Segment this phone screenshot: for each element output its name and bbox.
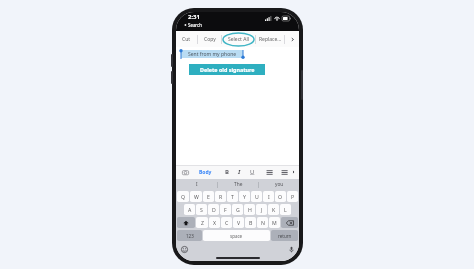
button[interactable]: Replace... [256,31,284,47]
button[interactable]: J [256,204,267,215]
button[interactable]: Delete old signature [189,64,265,75]
staticText: U [255,193,259,200]
staticText: Z [201,219,204,226]
staticText: P [291,193,295,200]
button[interactable]: E [203,191,214,202]
staticText: O [278,193,283,200]
staticText: you [275,181,284,188]
button[interactable]: W [190,191,202,202]
staticText: 2:31 [188,13,200,21]
staticText: F [224,206,227,213]
button[interactable]: N [257,217,268,228]
staticText: I [238,168,241,176]
button[interactable]: Z [196,217,208,228]
button[interactable]: D [208,204,219,215]
button[interactable]: S [196,204,207,215]
staticText: K [272,206,276,213]
button[interactable]: I [238,168,241,176]
staticText: return [278,233,292,239]
button[interactable]: K [268,204,279,215]
button[interactable]: I [263,191,274,202]
staticText: Y [243,193,246,200]
button[interactable]: M [269,217,280,228]
staticText: N [261,219,265,226]
staticText: G [236,206,240,213]
button[interactable]: Body [199,169,212,176]
staticText: Search [188,22,202,28]
button[interactable]: Insert photo [181,168,189,176]
button[interactable]: Cut [176,31,197,47]
button[interactable]: U [251,191,262,202]
button[interactable]: 123 [177,230,202,241]
button[interactable]: O [275,191,286,202]
button[interactable]: F [220,204,231,215]
other: More formatting [293,170,294,174]
button[interactable]: P [287,191,298,202]
staticText: E [207,193,210,200]
staticText: I [196,181,198,188]
staticText: B [249,219,253,226]
staticText: J [261,206,263,213]
staticText: Q [181,193,186,200]
staticText: The [234,181,243,188]
button[interactable]: Dictate [287,245,295,253]
staticText: D [212,206,216,213]
button[interactable]: X [209,217,220,228]
button[interactable]: H [244,204,255,215]
staticText: space [230,233,243,239]
staticText: S [200,206,203,213]
staticText: X [213,219,217,226]
button[interactable]: U [250,168,255,176]
button[interactable]: B [245,217,256,228]
button[interactable]: C [221,217,232,228]
staticText: V [237,219,241,226]
staticText: Sent from my phone [188,51,237,58]
button[interactable]: Emoji [180,245,188,253]
staticText: L [284,206,287,213]
button[interactable]: Y [239,191,250,202]
button[interactable]: T [227,191,238,202]
staticText: U [250,168,255,176]
button[interactable]: return [271,230,298,241]
button[interactable]: space [203,230,270,241]
staticText: W [194,193,199,200]
button[interactable]: you [259,179,299,190]
staticText: Cut [182,36,191,43]
button[interactable]: Select All [223,33,254,46]
button[interactable]: Delete [281,217,298,228]
button[interactable]: The [218,179,258,190]
button[interactable]: R [215,191,226,202]
staticText: R [219,193,223,200]
button[interactable]: I [176,179,217,190]
button[interactable]: Shift [177,217,195,228]
staticText: H [248,206,252,213]
button[interactable]: Q [177,191,189,202]
staticText: Select All [228,36,249,43]
button[interactable]: Copy [198,31,221,47]
button[interactable]: B [225,168,229,176]
button[interactable]: L [280,204,291,215]
staticText: M [272,219,277,226]
button[interactable]: Numbered list [280,168,288,176]
button[interactable]: Bulleted list [265,168,273,176]
staticText: B [225,168,229,176]
staticText: Delete old signature [200,66,255,73]
staticText: 123 [186,233,194,239]
staticText: Body [199,169,212,176]
button[interactable]: V [233,217,244,228]
staticText: C [225,219,229,226]
button[interactable]: More actions [285,31,299,47]
staticText: T [231,193,234,200]
button[interactable]: G [232,204,243,215]
button[interactable]: A [184,204,195,215]
staticText: Copy [204,36,216,43]
staticText: Replace... [259,36,282,43]
staticText: I [268,193,270,200]
staticText: A [188,206,192,213]
